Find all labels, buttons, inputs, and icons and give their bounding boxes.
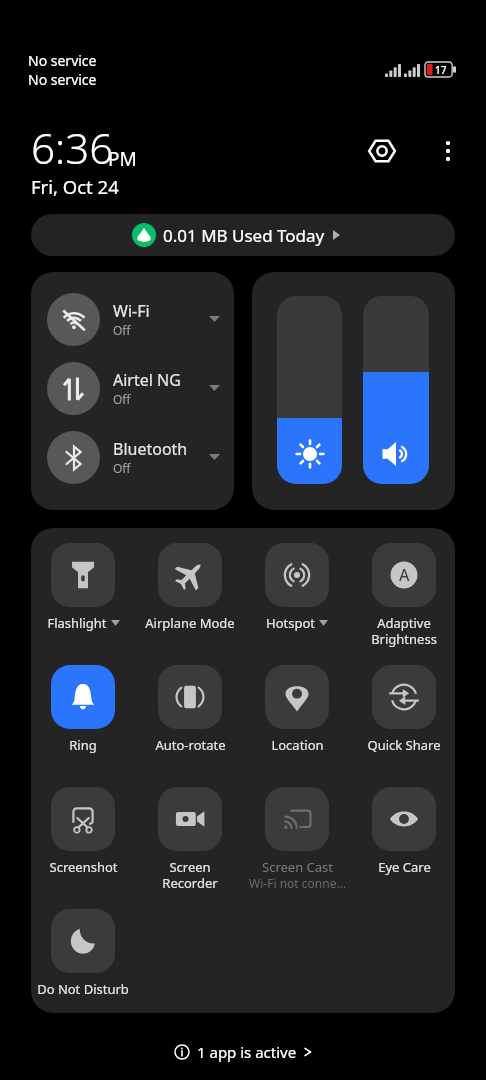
staticText: Do Not Disturb bbox=[37, 980, 129, 998]
button[interactable]: Flashlight bbox=[33, 543, 133, 632]
button[interactable]: Volume bbox=[363, 296, 429, 484]
button[interactable]: Settings bbox=[362, 131, 402, 171]
button[interactable]: 0.01 MB Used Today bbox=[31, 214, 455, 256]
button[interactable]: 1 app is active bbox=[0, 1024, 486, 1080]
button[interactable]: Wi-Fi bbox=[31, 285, 234, 353]
staticText: 0.01 MB Used Today bbox=[163, 224, 325, 247]
staticText: Flashlight bbox=[47, 614, 107, 632]
button[interactable]: Auto-rotate bbox=[140, 665, 240, 754]
button[interactable]: Screenshot bbox=[33, 787, 133, 876]
staticText: Eye Care bbox=[378, 858, 431, 876]
staticText: PM bbox=[108, 146, 137, 172]
staticText: Airtel NG bbox=[113, 369, 181, 391]
staticText: No service bbox=[28, 51, 97, 70]
button[interactable]: Screen Recorder bbox=[140, 787, 240, 891]
staticText: Auto-rotate bbox=[155, 736, 226, 754]
button[interactable]: More options bbox=[428, 131, 468, 171]
staticText: Hotspot bbox=[266, 614, 315, 632]
button[interactable]: Brightness bbox=[277, 296, 342, 484]
staticText: Wi-Fi bbox=[113, 300, 150, 322]
button[interactable]: Airtel NG bbox=[31, 354, 234, 422]
staticText: A bbox=[399, 564, 410, 586]
staticText: Airplane Mode bbox=[145, 614, 235, 632]
staticText: 6:36 bbox=[31, 119, 114, 176]
staticText: Location bbox=[271, 736, 324, 754]
staticText: Wi-Fi not conne… bbox=[249, 875, 346, 891]
staticText: Adaptive Brightness bbox=[371, 614, 437, 647]
staticText: Screen Recorder bbox=[162, 858, 218, 891]
staticText: Off bbox=[113, 391, 131, 407]
staticText: 17 bbox=[435, 63, 447, 77]
button[interactable]: Quick Share bbox=[354, 665, 454, 754]
button[interactable]: A bbox=[354, 543, 454, 647]
staticText: 1 app is active bbox=[197, 1042, 297, 1062]
staticText: Screenshot bbox=[49, 858, 118, 876]
button[interactable]: Eye Care bbox=[354, 787, 454, 876]
staticText: No service bbox=[28, 70, 97, 89]
staticText: Screen Cast bbox=[262, 858, 333, 876]
button[interactable]: Do Not Disturb bbox=[33, 909, 133, 998]
button[interactable]: Screen Cast bbox=[247, 787, 347, 892]
staticText: Off bbox=[113, 322, 131, 338]
staticText: Off bbox=[113, 460, 131, 476]
staticText: Fri, Oct 24 bbox=[31, 174, 119, 199]
button[interactable]: Hotspot bbox=[247, 543, 347, 632]
button[interactable]: Airplane Mode bbox=[140, 543, 240, 632]
staticText: Quick Share bbox=[367, 736, 441, 754]
button[interactable]: Location bbox=[247, 665, 347, 754]
button[interactable]: Bluetooth bbox=[31, 423, 234, 491]
staticText: Bluetooth bbox=[113, 438, 188, 460]
button[interactable]: Ring bbox=[33, 665, 133, 754]
staticText: Ring bbox=[69, 736, 97, 754]
